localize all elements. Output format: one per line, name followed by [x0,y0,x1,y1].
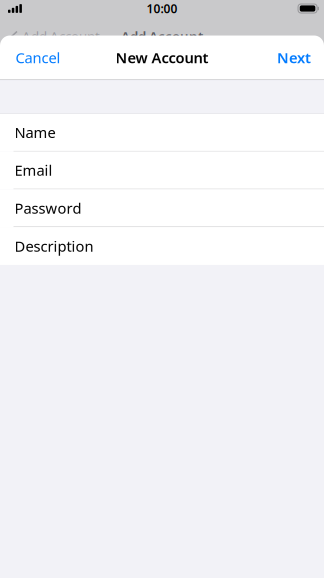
staticText: Add Account [121,27,203,45]
staticText: Next [277,48,311,67]
staticText: Email [14,160,52,180]
staticText: Add Account [22,27,100,45]
button[interactable]: Cancel [0,38,68,77]
staticText: Cancel [15,48,60,67]
button[interactable]: Next [269,38,324,77]
staticText: New Account [115,48,208,67]
staticText: 10:00 [146,0,177,16]
staticText: Password [14,198,81,218]
button[interactable]: Email [0,151,324,189]
button[interactable]: Password [0,189,324,227]
staticText: Name [14,123,55,142]
button[interactable]: Name [0,114,324,152]
staticText: Description [14,236,93,256]
button[interactable]: Description [0,227,324,265]
